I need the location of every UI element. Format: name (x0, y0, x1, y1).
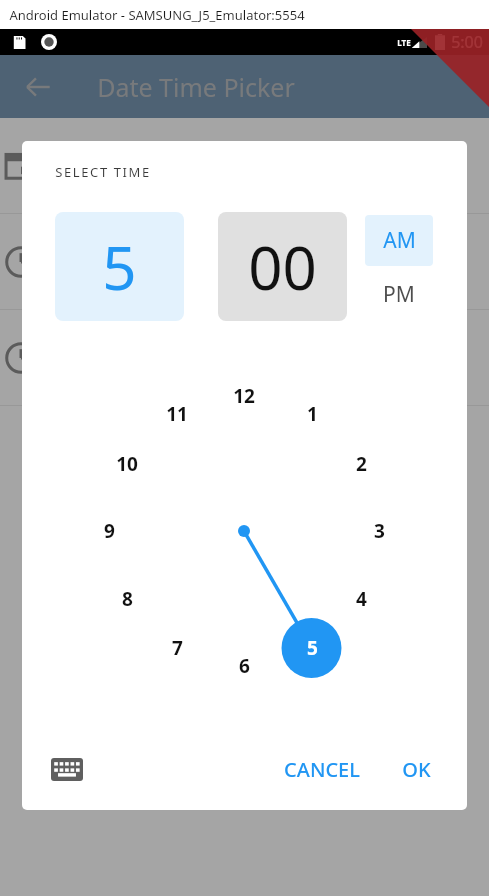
staticText: OK (402, 756, 431, 783)
staticText: 8 (122, 586, 133, 612)
staticText: 5 (307, 635, 318, 661)
button[interactable]: 4 (341, 584, 381, 614)
button[interactable]: PM (365, 269, 433, 320)
staticText: AM (383, 226, 416, 255)
staticText: PM (383, 280, 415, 309)
button[interactable]: 5 (292, 633, 332, 663)
button[interactable]: 3 (359, 516, 399, 546)
staticText: SELECT TIME (55, 163, 151, 181)
button[interactable]: 1 (292, 399, 332, 429)
staticText: LTE (397, 37, 411, 48)
staticText: 7 (172, 635, 183, 661)
button[interactable]: AM (365, 215, 433, 266)
button[interactable] (0, 214, 489, 310)
staticText: 00 (248, 226, 317, 308)
staticText: 5:00 (451, 31, 483, 53)
staticText: 1 (307, 401, 318, 427)
button[interactable]: OK (385, 747, 447, 791)
staticText: 9 (104, 518, 115, 544)
staticText: 12 (233, 383, 255, 409)
button[interactable]: 7 (157, 633, 197, 663)
button[interactable]: 6 (224, 651, 264, 681)
staticText: 11 (166, 401, 188, 427)
staticText: CANCEL (284, 756, 360, 783)
staticText: 10 (116, 451, 138, 477)
button[interactable]: Switch to text input (47, 752, 87, 786)
staticText: Date Time Picker (97, 70, 295, 104)
button[interactable]: 8 (107, 584, 147, 614)
staticText: Android Emulator - SAMSUNG_J5_Emulator:5… (9, 6, 305, 24)
button[interactable]: 00 (218, 212, 347, 321)
button[interactable]: 10 (107, 449, 147, 479)
button[interactable]: 11 (157, 399, 197, 429)
staticText: 2 (356, 451, 367, 477)
button[interactable] (0, 310, 489, 406)
button[interactable]: 9 (89, 516, 129, 546)
button[interactable]: 2 (341, 449, 381, 479)
staticText: 6 (239, 653, 250, 679)
button[interactable] (0, 118, 489, 214)
button[interactable]: 12 (224, 381, 264, 411)
button[interactable]: 5 (55, 212, 184, 321)
button[interactable]: CANCEL (267, 747, 377, 791)
staticText: 3 (374, 518, 385, 544)
staticText: 4 (356, 586, 367, 612)
staticText: 5 (102, 226, 137, 308)
button[interactable]: Back (14, 63, 62, 111)
